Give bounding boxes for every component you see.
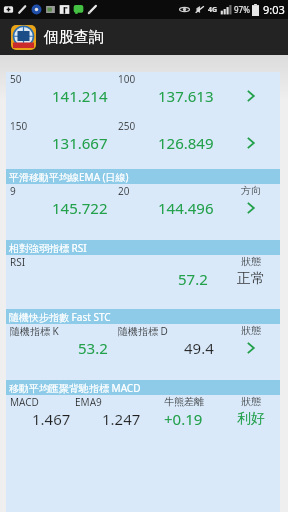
staticText: 137.613 (158, 86, 214, 106)
other: Details (244, 134, 258, 152)
staticText: 相對強弱指標 RSI (9, 241, 87, 255)
staticText: 9:03 (263, 2, 285, 17)
staticText: 53.2 (78, 338, 108, 358)
button[interactable]: 相對強弱指標 RSI (6, 240, 280, 255)
staticText: 隨機快步指數 Fast STC (9, 310, 111, 324)
staticText: 利好 (237, 410, 265, 428)
staticText: RSI (10, 255, 26, 269)
staticText: 250 (118, 119, 136, 133)
button[interactable]: 9 (6, 184, 280, 218)
staticText: 50 (10, 72, 22, 86)
button[interactable]: 移動平均匯聚背馳指標 MACD (6, 380, 280, 395)
staticText: 狀態 (241, 255, 261, 268)
staticText: 狀態 (241, 324, 261, 337)
button[interactable]: 隨機指標 K (6, 324, 280, 358)
staticText: 個股查詢 (44, 28, 104, 47)
staticText: 49.4 (184, 338, 214, 358)
other: Details (244, 199, 258, 217)
staticText: 97% (234, 4, 250, 15)
staticText: 移動平均匯聚背馳指標 MACD (9, 381, 141, 395)
button[interactable]: 平滑移動平均線EMA (日線) (6, 169, 280, 184)
staticText: MACD (10, 395, 39, 409)
other: Details (244, 339, 258, 357)
button[interactable]: 隨機快步指數 Fast STC (6, 309, 280, 324)
button[interactable]: MACD (6, 395, 280, 429)
staticText: +0.19 (164, 409, 203, 429)
staticText: 牛熊差離 (164, 395, 204, 408)
staticText: 100 (118, 72, 136, 86)
staticText: 1.467 (32, 409, 71, 429)
staticText: EMA9 (75, 395, 102, 409)
staticText: 1.247 (102, 409, 141, 429)
staticText: 131.667 (52, 133, 108, 153)
staticText: 正常 (237, 270, 265, 288)
staticText: 4G (208, 5, 218, 15)
staticText: 20 (118, 184, 130, 198)
staticText: 隨機指標 D (118, 324, 168, 338)
button[interactable]: App icon (11, 25, 36, 50)
staticText: 144.496 (158, 198, 214, 218)
button[interactable]: RSI (6, 255, 280, 289)
staticText: 9 (10, 184, 16, 198)
other: Details (244, 87, 258, 105)
staticText: 隨機指標 K (10, 324, 59, 338)
button[interactable]: 150 (6, 119, 280, 153)
staticText: 126.849 (158, 133, 214, 153)
staticText: 平滑移動平均線EMA (日線) (9, 170, 129, 184)
staticText: 狀態 (241, 395, 261, 408)
staticText: 150 (10, 119, 28, 133)
staticText: 方向 (241, 184, 261, 197)
button[interactable]: 50 (6, 72, 280, 106)
staticText: 145.722 (52, 198, 108, 218)
staticText: 141.214 (52, 86, 108, 106)
staticText: 57.2 (178, 269, 208, 289)
